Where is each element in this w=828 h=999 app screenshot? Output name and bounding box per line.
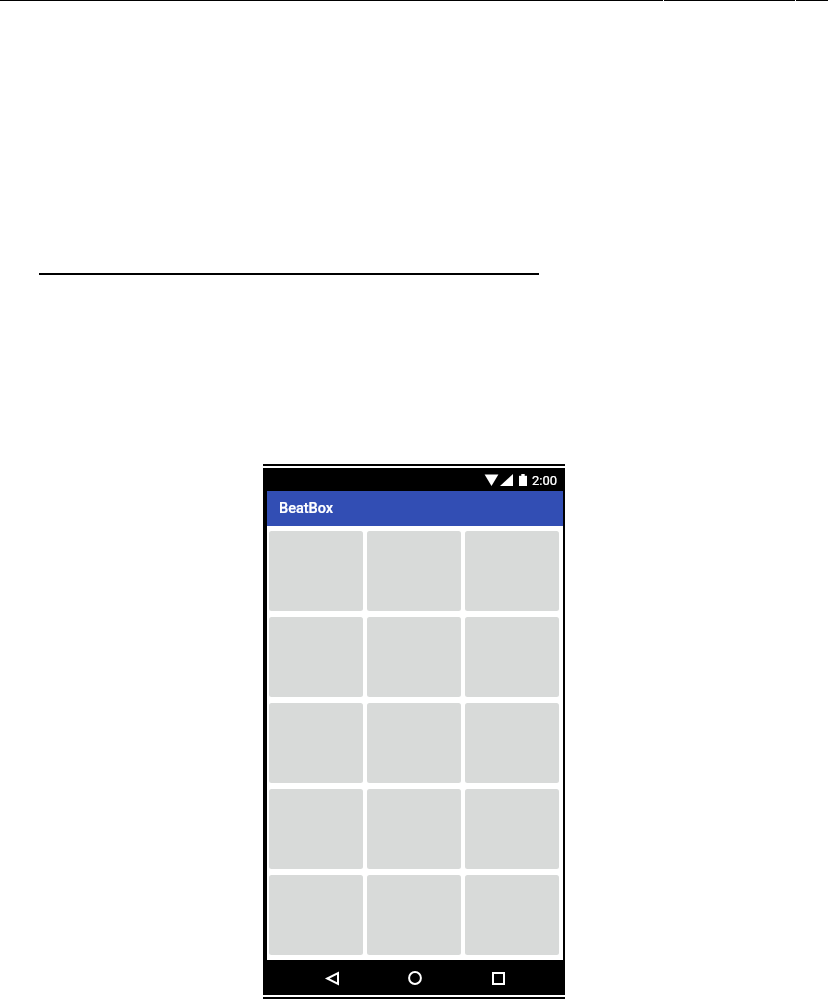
staticText: BeatBox (279, 500, 334, 517)
button[interactable]: Home (406, 969, 424, 987)
button[interactable]: Recent apps (489, 969, 507, 987)
button[interactable]: BeatBox (267, 491, 563, 526)
button[interactable]: Back (323, 969, 341, 987)
staticText: 2:00 (532, 473, 558, 488)
